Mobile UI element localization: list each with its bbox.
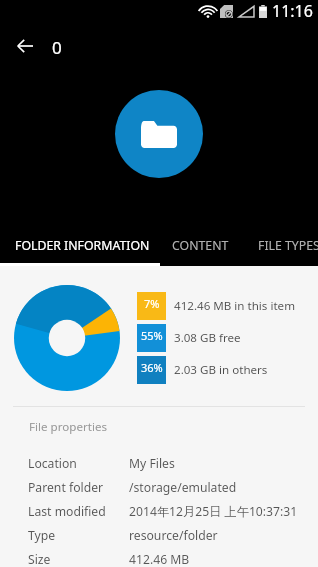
button[interactable]: FOLDER INFORMATION (0, 229, 160, 266)
staticText: Type (28, 527, 129, 544)
button[interactable]: Type (28, 523, 318, 547)
staticText: FILE TYPES (258, 237, 318, 254)
staticText: My Files (129, 455, 175, 472)
staticText: Last modified (28, 503, 129, 520)
button[interactable]: Storage usage chart (14, 285, 120, 391)
staticText: 36% (141, 360, 163, 375)
staticText: 2.03 GB in others (174, 362, 268, 378)
staticText: CONTENT (172, 237, 229, 254)
staticText: 55% (141, 328, 163, 343)
staticText: 412.46 MB in this item (174, 298, 295, 314)
button[interactable]: 55% (137, 324, 241, 352)
button[interactable]: Location (28, 451, 318, 475)
staticText: 412.46 MB (129, 551, 190, 567)
button[interactable]: Parent folder (28, 475, 318, 499)
staticText: resource/folder (129, 527, 218, 544)
button[interactable]: 36% (137, 356, 268, 384)
staticText: Parent folder (28, 479, 129, 496)
button[interactable]: 7% (137, 292, 295, 320)
staticText: /storage/emulated (129, 479, 237, 496)
button[interactable]: Last modified (28, 499, 318, 523)
staticText: 11:16 (272, 0, 313, 22)
button[interactable]: FILE TYPES (246, 229, 318, 266)
staticText: 3.08 GB free (174, 330, 241, 346)
staticText: 2014年12月25日 上午10:37:31 (129, 503, 298, 520)
staticText: Location (28, 455, 129, 472)
button[interactable]: Size (28, 547, 318, 567)
staticText: File properties (29, 419, 107, 435)
staticText: 0 (52, 36, 62, 59)
staticText: 7% (144, 296, 160, 311)
button[interactable]: Back (11, 32, 39, 60)
button[interactable]: CONTENT (160, 229, 246, 266)
button[interactable]: Folder (115, 90, 203, 178)
staticText: Size (28, 551, 129, 567)
staticText: FOLDER INFORMATION (15, 237, 150, 254)
